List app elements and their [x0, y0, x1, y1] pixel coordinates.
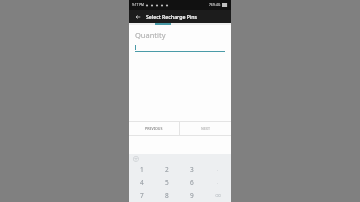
staticText: 76% 4G [209, 3, 221, 7]
button[interactable]: 1 [129, 163, 154, 176]
button[interactable]: Emoji [132, 155, 139, 162]
staticText: 5 [165, 178, 169, 187]
staticText: PREVIOUS [145, 126, 163, 131]
staticText: 7 [140, 191, 144, 200]
staticText: 3 [190, 165, 194, 174]
button[interactable]: 5 [154, 176, 179, 189]
staticText: . [217, 167, 219, 172]
staticText: 9:17 PM [132, 3, 144, 7]
staticText: . [217, 180, 219, 185]
button[interactable]: NEXT [180, 122, 231, 135]
staticText: 2 [165, 165, 169, 174]
button[interactable]: ⌫ [205, 189, 231, 202]
button[interactable]: PREVIOUS [129, 122, 179, 135]
staticText: 1 [140, 165, 144, 174]
button[interactable]: 9 [179, 189, 205, 202]
button[interactable]: Quantity [135, 30, 225, 52]
button[interactable]: 4 [129, 176, 154, 189]
staticText: 4 [140, 178, 144, 187]
staticText: Select Recharge Pins [146, 13, 198, 20]
button[interactable]: 2 [154, 163, 179, 176]
staticText: 9 [190, 191, 194, 200]
staticText: 8 [165, 191, 169, 200]
staticText: NEXT [201, 126, 211, 131]
button[interactable]: 7 [129, 189, 154, 202]
button[interactable]: 6 [179, 176, 205, 189]
button[interactable]: 8 [154, 189, 179, 202]
button[interactable]: Back [133, 12, 142, 21]
staticText: ⌫ [215, 193, 221, 198]
button[interactable]: 3 [179, 163, 205, 176]
staticText: 6 [190, 178, 194, 187]
staticText: Quantity [135, 30, 166, 40]
